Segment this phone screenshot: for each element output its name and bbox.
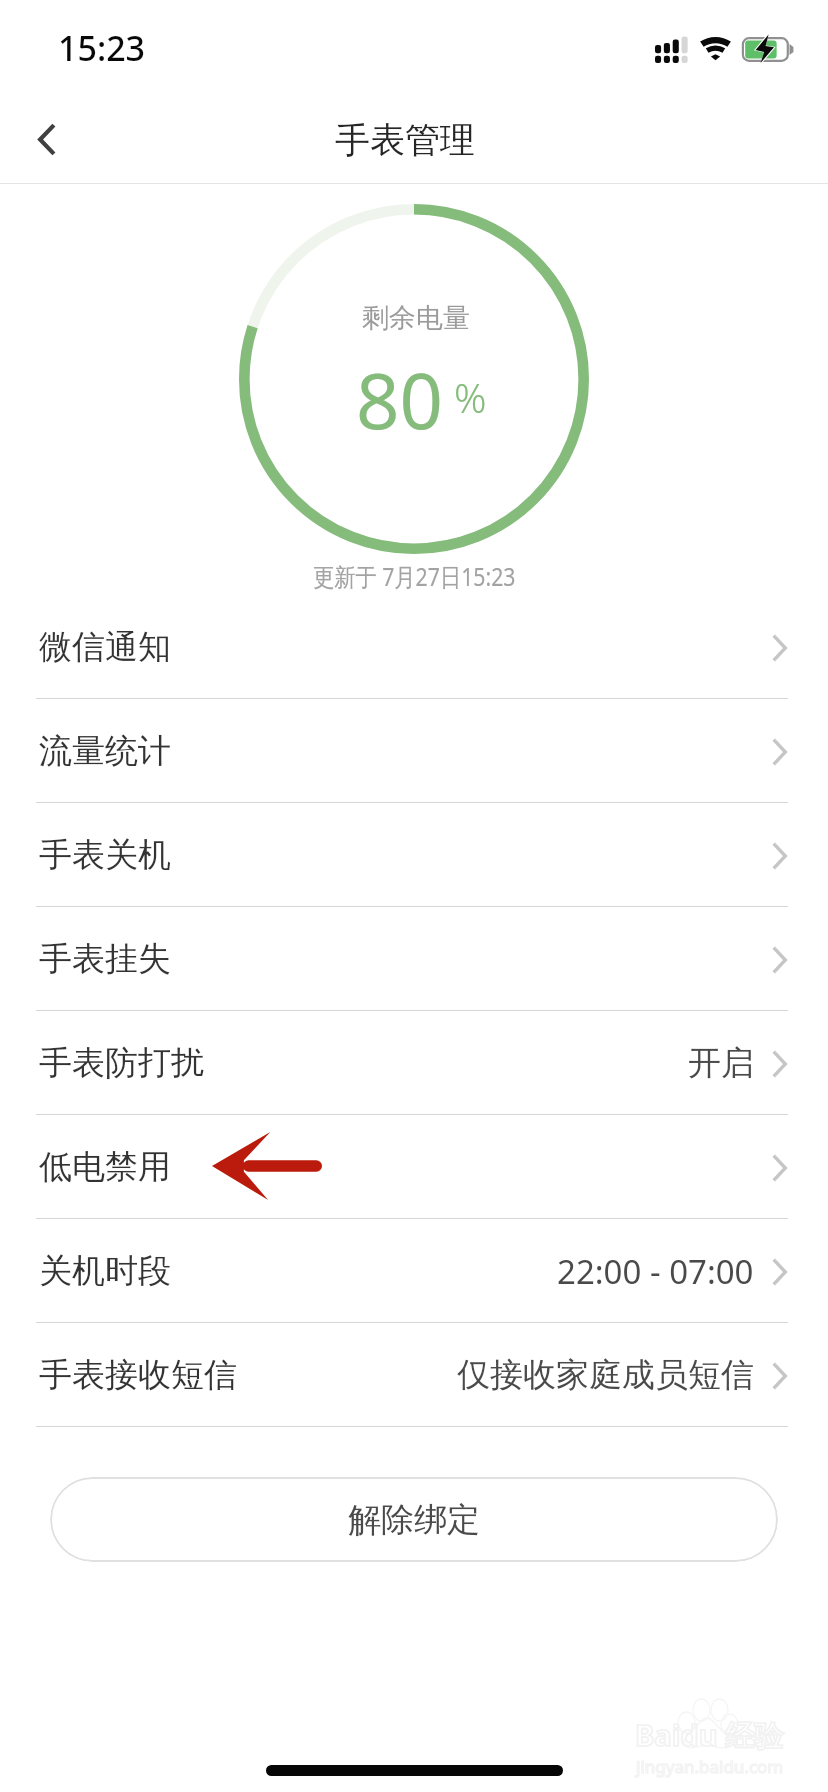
button[interactable]: 手表关机 bbox=[0, 803, 828, 907]
staticText: 手表接收短信 bbox=[39, 1354, 237, 1396]
staticText: 更新于 7月27日15:23 bbox=[313, 559, 516, 593]
button[interactable]: 微信通知 bbox=[0, 595, 828, 699]
staticText: % bbox=[454, 370, 487, 424]
button[interactable]: 关机时段 bbox=[0, 1219, 828, 1323]
button[interactable]: 手表挂失 bbox=[0, 907, 828, 1011]
staticText: 15:23 bbox=[58, 25, 146, 71]
staticText: jingyan.baidu.com bbox=[636, 1755, 784, 1778]
button[interactable]: 手表防打扰 bbox=[0, 1011, 828, 1115]
staticText: 开启 bbox=[688, 1042, 754, 1084]
staticText: 22:00 - 07:00 bbox=[557, 1249, 754, 1294]
staticText: 解除绑定 bbox=[348, 1499, 480, 1541]
staticText: Baidu 经验 bbox=[635, 1715, 784, 1755]
button[interactable]: Back bbox=[6, 100, 84, 178]
staticText: 手表防打扰 bbox=[39, 1042, 204, 1084]
staticText: 剩余电量 bbox=[362, 301, 470, 335]
staticText: 仅接收家庭成员短信 bbox=[457, 1354, 754, 1396]
staticText: 低电禁用 bbox=[39, 1146, 171, 1188]
staticText: 80 bbox=[356, 348, 443, 452]
staticText: 微信通知 bbox=[39, 626, 171, 668]
staticText: 手表关机 bbox=[39, 834, 171, 876]
button[interactable]: 流量统计 bbox=[0, 699, 828, 803]
staticText: 手表管理 bbox=[335, 118, 475, 162]
staticText: 流量统计 bbox=[39, 730, 171, 772]
button[interactable]: 低电禁用 bbox=[0, 1115, 828, 1219]
staticText: 关机时段 bbox=[39, 1250, 171, 1292]
button[interactable]: 解除绑定 bbox=[50, 1477, 778, 1562]
button[interactable]: 手表接收短信 bbox=[0, 1323, 828, 1427]
staticText: 手表挂失 bbox=[39, 938, 171, 980]
